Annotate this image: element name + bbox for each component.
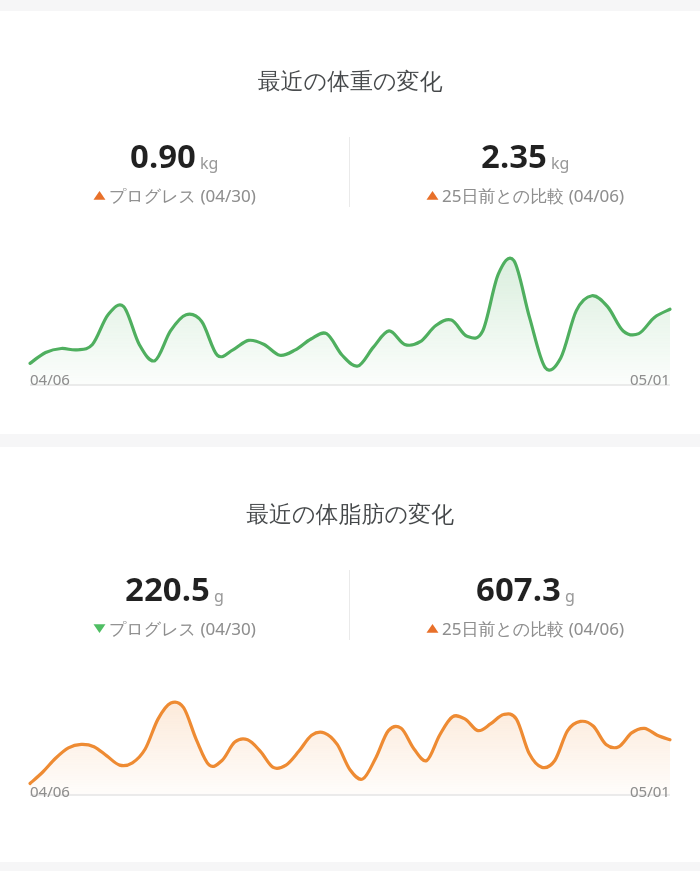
staticText: g xyxy=(214,585,224,607)
staticText: g xyxy=(565,585,575,607)
other: Increase xyxy=(426,189,439,202)
other: Increase xyxy=(93,189,106,202)
staticText: 04/06 xyxy=(30,781,70,801)
other: Decrease xyxy=(93,622,106,635)
staticText: 最近の体脂肪の変化 xyxy=(0,500,700,529)
staticText: kg xyxy=(551,152,570,174)
other: Increase xyxy=(426,622,439,635)
staticText: 04/06 xyxy=(30,369,70,389)
staticText: 2.35 xyxy=(481,133,547,178)
staticText: 220.5 xyxy=(125,566,210,611)
staticText: 607.3 xyxy=(476,566,561,611)
staticText: 最近の体重の変化 xyxy=(0,67,700,96)
staticText: 05/01 xyxy=(630,369,670,389)
staticText: プログレス (04/30) xyxy=(109,617,256,640)
staticText: 25日前との比較 (04/06) xyxy=(442,184,625,207)
button[interactable]: 0.90 xyxy=(0,133,349,213)
button[interactable]: 2.35 xyxy=(350,133,700,213)
staticText: 0.90 xyxy=(130,133,196,178)
button[interactable]: 607.3 xyxy=(350,566,700,646)
button[interactable]: 220.5 xyxy=(0,566,349,646)
staticText: 05/01 xyxy=(630,781,670,801)
staticText: kg xyxy=(200,152,219,174)
staticText: 25日前との比較 (04/06) xyxy=(442,617,625,640)
staticText: プログレス (04/30) xyxy=(109,184,256,207)
